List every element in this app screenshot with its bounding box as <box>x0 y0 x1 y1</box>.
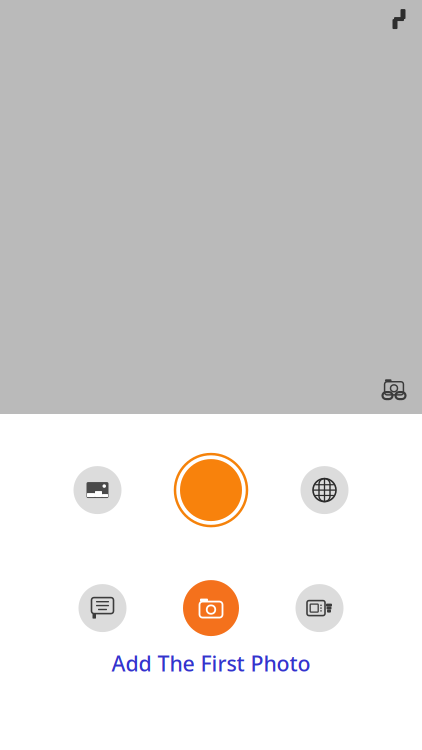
button[interactable]: Take Photo <box>173 452 249 528</box>
button[interactable]: Flash <box>384 1 414 37</box>
staticText: Add The First Photo <box>111 649 310 677</box>
button[interactable]: Comments <box>78 584 126 632</box>
button[interactable]: Add The First Photo <box>101 646 320 680</box>
button[interactable]: Video <box>295 584 343 632</box>
button[interactable]: Photo Library <box>73 466 121 514</box>
button[interactable]: Switch Camera <box>374 368 414 406</box>
button[interactable]: Camera <box>183 580 239 636</box>
button[interactable]: Web <box>300 466 348 514</box>
